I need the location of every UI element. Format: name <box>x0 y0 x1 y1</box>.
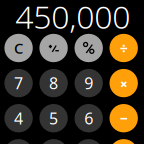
button[interactable]: 5 <box>39 104 68 132</box>
button[interactable]: C <box>4 34 33 62</box>
button[interactable]: 2 <box>39 139 68 144</box>
button[interactable]: 1 <box>4 139 33 144</box>
button[interactable]: Plus Minus <box>39 34 68 62</box>
staticText: 8 <box>49 72 58 94</box>
button[interactable]: 4 <box>4 104 33 132</box>
staticText: 4 <box>14 108 23 129</box>
button[interactable]: 6 <box>74 104 103 132</box>
staticText: 5 <box>49 108 58 129</box>
button[interactable]: Multiply <box>109 69 138 97</box>
staticText: 6 <box>84 108 93 129</box>
button[interactable]: Divide <box>109 34 138 62</box>
staticText: 450,000 <box>15 0 130 38</box>
button[interactable]: 3 <box>74 139 103 144</box>
button[interactable]: Plus <box>109 139 138 144</box>
staticText: C <box>14 38 23 58</box>
button[interactable]: 7 <box>4 69 33 97</box>
button[interactable]: Minus <box>109 104 138 132</box>
button[interactable]: 9 <box>74 69 103 97</box>
button[interactable]: 8 <box>39 69 68 97</box>
staticText: 7 <box>14 72 23 94</box>
button[interactable]: Percent <box>74 34 103 62</box>
staticText: 9 <box>84 72 93 94</box>
